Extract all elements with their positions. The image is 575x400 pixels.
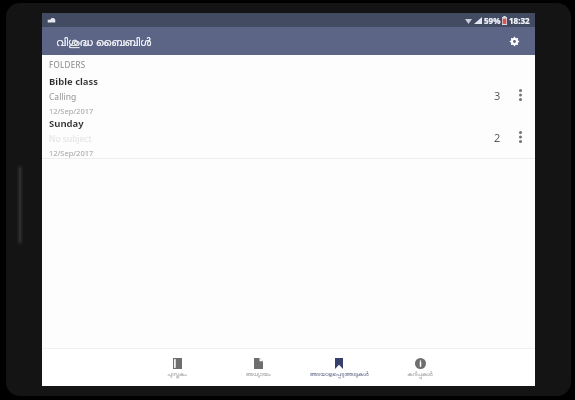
staticText: കുറിപ്പുകൾ <box>407 372 433 378</box>
staticText: പുസ്തകം <box>167 372 187 378</box>
staticText: Sunday <box>49 117 84 130</box>
button[interactable]: കുറിപ്പുകൾ <box>379 348 460 386</box>
staticText: 12/Sep/2017 <box>49 106 94 116</box>
staticText: FOLDERS <box>49 59 86 70</box>
staticText: അടയാളപ്പെടുത്തലുകൾ <box>309 372 369 378</box>
button[interactable]: More options <box>511 128 529 146</box>
staticText: No subject <box>49 133 92 145</box>
staticText: Bible class <box>49 75 99 88</box>
staticText: 2 <box>494 130 501 145</box>
staticText: 3 <box>494 88 501 103</box>
button[interactable]: Sunday <box>42 116 535 158</box>
button[interactable]: അധ്യായം <box>217 348 298 386</box>
button[interactable]: പുസ്തകം <box>137 348 217 386</box>
staticText: 18:32 <box>509 15 530 26</box>
staticText: അധ്യായം <box>245 372 271 378</box>
staticText: വിശുദ്ധ ബൈബിൾ <box>56 34 152 49</box>
staticText: Calling <box>49 91 77 103</box>
button[interactable]: അടയാളപ്പെടുത്തലുകൾ <box>298 348 379 386</box>
button[interactable]: More options <box>511 86 529 104</box>
staticText: 59% <box>484 15 501 26</box>
button[interactable]: Settings <box>503 30 525 52</box>
button[interactable]: Bible class <box>42 74 535 116</box>
staticText: 12/Sep/2017 <box>49 148 94 158</box>
